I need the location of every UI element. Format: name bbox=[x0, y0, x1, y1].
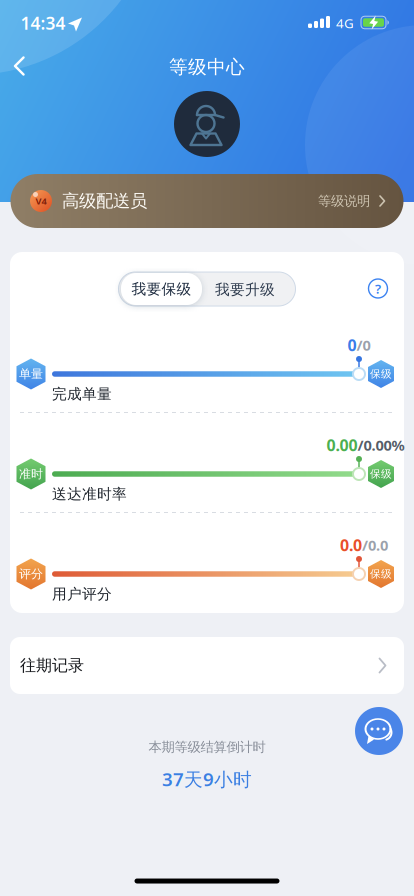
staticText: /0.00% bbox=[357, 435, 404, 455]
button[interactable]: 客服 bbox=[355, 707, 403, 755]
staticText: 保级 bbox=[370, 467, 392, 480]
staticText: /0.0 bbox=[362, 535, 388, 555]
staticText: 保级 bbox=[370, 367, 392, 380]
staticText: 14:34 bbox=[20, 11, 65, 34]
staticText: 4G bbox=[336, 14, 354, 32]
staticText: 本期等级结算倒计时 bbox=[148, 739, 265, 755]
staticText: 0.0 bbox=[340, 534, 362, 556]
staticText: 保级 bbox=[370, 567, 392, 580]
staticText: 评分 bbox=[19, 567, 43, 581]
button[interactable]: 帮助 bbox=[367, 277, 389, 299]
staticText: 用户评分 bbox=[52, 585, 112, 603]
staticText: 我要升级 bbox=[215, 280, 275, 298]
staticText: 等级中心 bbox=[169, 55, 245, 78]
staticText: 高级配送员 bbox=[62, 190, 147, 212]
staticText: V4 bbox=[35, 195, 46, 207]
staticText: /0 bbox=[356, 335, 370, 355]
staticText: 完成单量 bbox=[52, 385, 112, 403]
button[interactable]: 我要升级 bbox=[201, 272, 289, 306]
staticText: 准时 bbox=[19, 467, 43, 481]
staticText: 我要保级 bbox=[131, 280, 191, 298]
button[interactable]: 我要保级 bbox=[121, 273, 202, 305]
staticText: 0.00 bbox=[326, 434, 357, 456]
button[interactable]: Back bbox=[4, 52, 32, 80]
staticText: 往期记录 bbox=[20, 656, 84, 675]
staticText: 送达准时率 bbox=[52, 485, 127, 503]
staticText: 0 bbox=[347, 334, 356, 356]
button[interactable]: 往期记录 bbox=[10, 637, 404, 694]
staticText: 单量 bbox=[19, 367, 43, 381]
button[interactable]: V4 bbox=[10, 174, 403, 228]
staticText: 等级说明 bbox=[318, 193, 370, 209]
staticText: ? bbox=[375, 280, 381, 297]
staticText: 37天9小时 bbox=[162, 767, 252, 791]
